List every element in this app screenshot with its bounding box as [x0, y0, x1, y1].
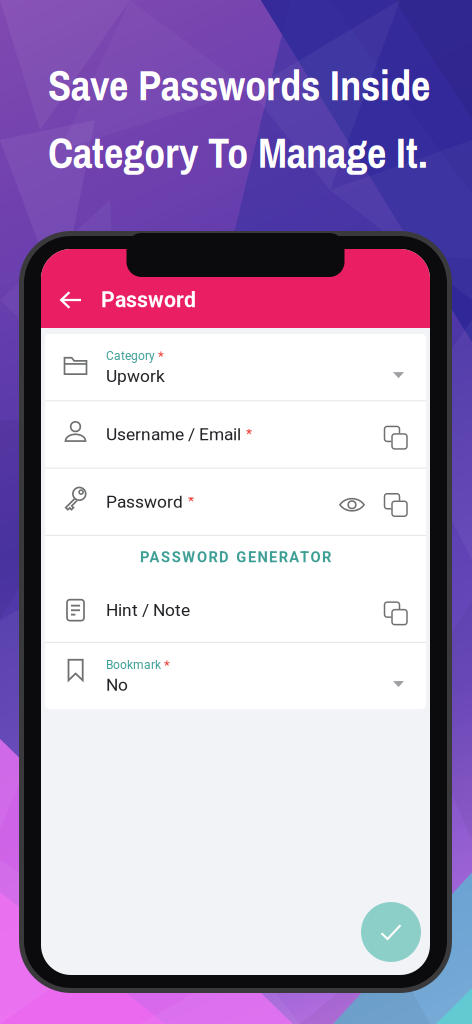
staticText: Hint / Note: [106, 600, 190, 620]
staticText: No: [106, 675, 128, 695]
button[interactable]: Username / Email: [45, 401, 426, 468]
staticText: *: [158, 348, 164, 364]
button[interactable]: PASSWORD GENERATOR: [45, 536, 426, 578]
staticText: PASSWORD GENERATOR: [140, 549, 331, 566]
button[interactable]: Bookmark: [45, 643, 426, 709]
staticText: *: [164, 657, 170, 673]
staticText: Username / Email: [106, 424, 241, 445]
staticText: *: [188, 493, 194, 510]
button[interactable]: Hint / Note: [45, 578, 426, 642]
staticText: Upwork: [106, 366, 165, 386]
button[interactable]: Back: [51, 280, 91, 320]
button[interactable]: Save: [361, 902, 421, 962]
staticText: Bookmark: [106, 658, 161, 672]
staticText: Category: [106, 349, 155, 363]
staticText: Save Passwords Inside: [48, 56, 430, 113]
staticText: Password: [106, 492, 183, 512]
staticText: Category To Manage It.: [48, 123, 428, 181]
staticText: Password: [101, 287, 196, 312]
staticText: *: [246, 426, 252, 443]
button[interactable]: Category: [45, 334, 426, 400]
button[interactable]: Password: [45, 469, 426, 535]
